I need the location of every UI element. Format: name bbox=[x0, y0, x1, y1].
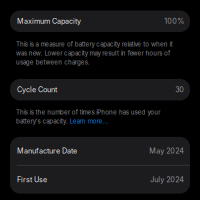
button[interactable]: Manufacture Date bbox=[10, 137, 190, 165]
staticText: First Use bbox=[17, 175, 47, 184]
staticText: 30 bbox=[175, 85, 184, 94]
staticText: battery's capacity. bbox=[16, 117, 70, 125]
staticText: This is the number of times iPhone has u… bbox=[16, 108, 160, 116]
staticText: Learn more... bbox=[70, 117, 109, 125]
staticText: July 2024 bbox=[150, 175, 184, 184]
staticText: 100% bbox=[164, 17, 184, 26]
button[interactable]: Cycle Count bbox=[10, 79, 190, 100]
staticText: Manufacture Date bbox=[17, 146, 77, 155]
staticText: This is a measure of battery capacity re… bbox=[16, 40, 173, 48]
staticText: usage between charges. bbox=[16, 58, 90, 66]
staticText: May 2024 bbox=[149, 146, 184, 155]
button[interactable]: Maximum Capacity bbox=[10, 10, 190, 32]
button[interactable]: Learn more... bbox=[70, 117, 109, 125]
staticText: was new. Lower capacity may result in fe… bbox=[16, 49, 170, 57]
staticText: Maximum Capacity bbox=[17, 17, 81, 26]
staticText: Cycle Count bbox=[17, 85, 57, 94]
button[interactable]: First Use bbox=[10, 166, 190, 194]
